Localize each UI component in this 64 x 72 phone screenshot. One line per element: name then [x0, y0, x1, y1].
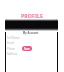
staticText: My Account	[6, 31, 55, 35]
button[interactable]: Save	[22, 46, 32, 51]
staticText: Address	[7, 52, 18, 56]
staticText: Save	[24, 47, 30, 51]
staticText: Full Name	[7, 36, 20, 40]
staticText: Phone	[7, 47, 16, 51]
staticText: PROFILE	[0, 12, 64, 19]
staticText: Email	[7, 41, 14, 45]
